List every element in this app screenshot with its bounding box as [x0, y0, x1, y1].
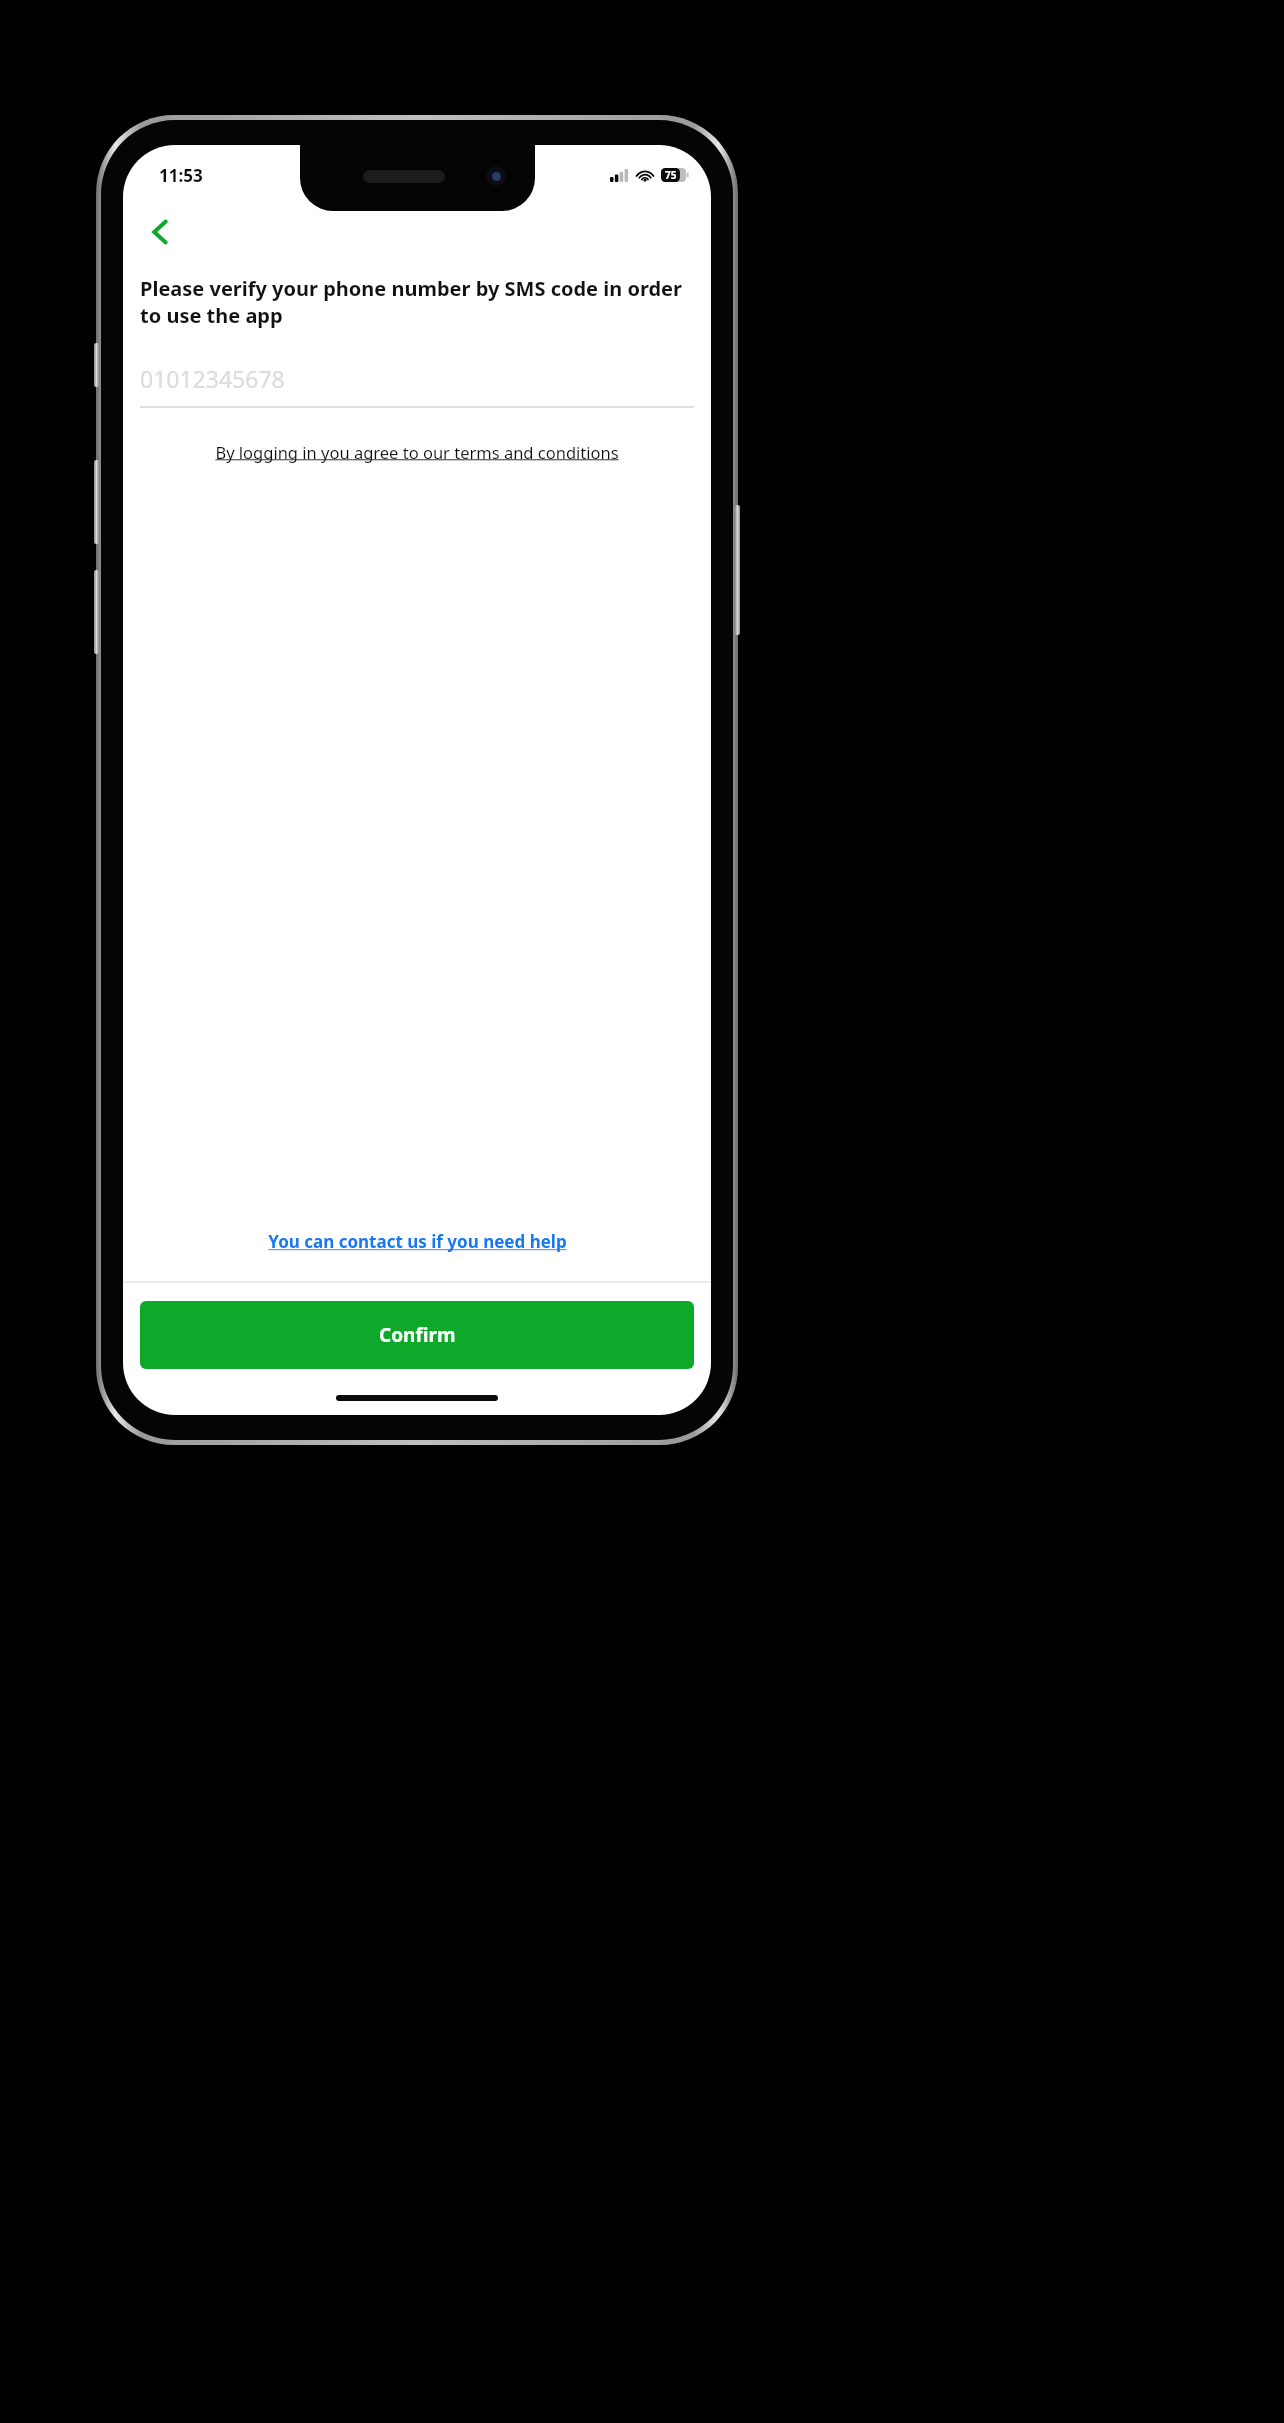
staticText: 01012345678 — [140, 363, 285, 394]
staticText: 75 — [665, 168, 677, 182]
button[interactable]: By logging in you agree to our terms and… — [159, 441, 675, 463]
button[interactable]: Back — [137, 209, 183, 255]
staticText: 11:53 — [159, 164, 203, 187]
button[interactable]: 01012345678 — [140, 363, 694, 408]
button[interactable]: You can contact us if you need help — [147, 1230, 687, 1253]
staticText: By logging in you agree to our terms and… — [215, 441, 619, 463]
button[interactable]: Confirm — [140, 1301, 694, 1369]
staticText: Confirm — [379, 1322, 456, 1348]
staticText: Please verify your phone number by SMS c… — [140, 275, 694, 329]
staticText: You can contact us if you need help — [268, 1230, 567, 1253]
